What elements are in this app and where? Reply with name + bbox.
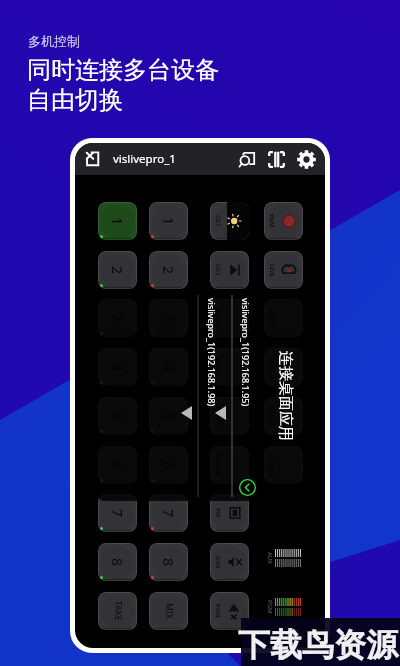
staticText: MIX [163, 603, 175, 620]
button[interactable]: AUX [210, 543, 249, 581]
staticText: 7 [159, 509, 178, 518]
button[interactable]: PIP [210, 494, 249, 532]
button[interactable]: 8 [98, 543, 137, 581]
staticText: AUX [266, 552, 274, 564]
button[interactable]: LIVE [264, 251, 303, 289]
button[interactable]: MIX [149, 592, 188, 630]
staticText: vislivepro_1 [113, 151, 176, 167]
button[interactable]: MUSIC [210, 348, 249, 386]
staticText: TAKE [112, 601, 124, 621]
button[interactable]: MUSIC [210, 397, 249, 435]
staticText: vislivepro_1(192.168.1.98) [206, 298, 218, 407]
staticText: MUSIC [214, 308, 222, 328]
button[interactable]: PGM [264, 202, 303, 240]
button[interactable]: LOGO3 [264, 397, 303, 435]
staticText: CG1 [214, 264, 222, 276]
button[interactable]: LOGO2 [264, 348, 303, 386]
staticText: CG1 [214, 215, 222, 227]
staticText: MUSIC [214, 357, 222, 377]
staticText: PGM [266, 600, 274, 614]
button[interactable]: 5 [149, 397, 188, 435]
staticText: PIP [214, 508, 222, 518]
button[interactable]: CG1 [210, 202, 249, 240]
staticText: 8 [108, 558, 127, 567]
staticText: 2 [108, 266, 127, 275]
staticText: 1 [108, 217, 127, 226]
button[interactable]: PGM [210, 592, 249, 630]
button[interactable]: MUSIC [210, 299, 249, 337]
button[interactable]: 8 [149, 543, 188, 581]
staticText: AUX [214, 556, 222, 569]
staticText: 多机控制 [28, 33, 80, 49]
button[interactable]: 7 [149, 494, 188, 532]
staticText: 下载鸟资源 [238, 625, 398, 665]
button[interactable]: 2 [149, 251, 188, 289]
button[interactable]: Disconnect [84, 151, 101, 168]
staticText: 自由切换 [27, 85, 123, 115]
staticText: vislivepro_1(192.168.1.95) [240, 298, 252, 407]
staticText: PGM [214, 604, 222, 618]
staticText: 7 [108, 509, 127, 518]
staticText: 8 [159, 558, 178, 567]
button[interactable]: Screenshot [238, 150, 256, 168]
button[interactable]: SOUND [210, 446, 249, 484]
button[interactable]: Settings [297, 150, 316, 169]
button[interactable]: TAKE [98, 592, 137, 630]
button[interactable]: 7 [98, 494, 137, 532]
button[interactable]: 2 [98, 251, 137, 289]
staticText: 1 [159, 217, 178, 226]
staticText: LIVE [268, 264, 276, 277]
staticText: 同时连接多台设备 [27, 55, 219, 85]
button[interactable]: CG1 [210, 251, 249, 289]
staticText: 连接桌面应用 [276, 351, 295, 441]
button[interactable]: Back [239, 479, 256, 496]
button[interactable]: 1 [98, 202, 137, 240]
staticText: MUSIC [214, 406, 222, 426]
staticText: 2 [159, 266, 178, 275]
button[interactable]: Split screen [268, 151, 285, 168]
button[interactable]: 1 [149, 202, 188, 240]
staticText: PGM [268, 214, 276, 228]
